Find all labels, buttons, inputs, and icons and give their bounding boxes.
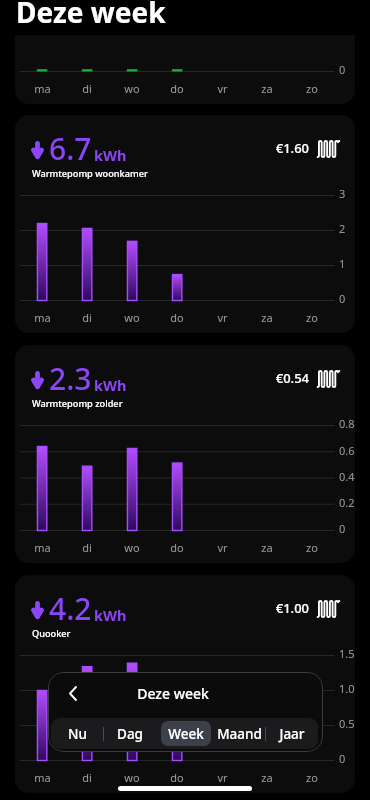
staticText: vr [217,540,228,555]
staticText: do [170,310,184,325]
button[interactable]: Nu [54,721,100,746]
button[interactable]: 0 [15,35,355,104]
staticText: wo [124,540,140,555]
staticText: vr [217,310,228,325]
button[interactable]: 4.2 [15,575,355,793]
staticText: Nu [68,725,87,743]
staticText: kWh [94,375,127,395]
staticText: 1.5 [339,646,355,661]
staticText: wo [124,770,140,785]
button[interactable]: Maand [217,721,262,746]
staticText: ma [34,540,51,555]
staticText: Jaar [279,725,305,743]
staticText: vr [217,81,228,96]
staticText: Dag [117,725,143,743]
staticText: 0 [339,291,346,306]
staticText: wo [124,81,140,96]
staticText: ma [34,310,51,325]
staticText: 0 [339,751,346,766]
button[interactable]: Terug [55,679,91,707]
staticText: zo [306,770,318,785]
staticText: di [82,540,92,555]
staticText: kWh [94,145,127,165]
staticText: do [170,81,184,96]
staticText: 3 [339,186,346,201]
staticText: 4.2 [49,588,92,629]
staticText: zo [306,81,318,96]
button[interactable]: Jaar [268,721,315,746]
staticText: kWh [94,605,127,625]
staticText: Warmtepomp woonkamer [32,167,148,180]
staticText: 0 [339,521,346,536]
staticText: za [261,310,273,325]
staticText: 2.3 [49,358,92,399]
staticText: 2 [339,221,346,236]
staticText: €1.60 [275,139,309,157]
staticText: za [261,81,273,96]
staticText: 0.2 [339,495,355,510]
button[interactable]: Week [161,721,211,746]
staticText: Deze week [16,0,166,31]
button[interactable]: Dag [106,721,154,746]
staticText: €1.00 [275,599,309,617]
staticText: 6.7 [49,128,92,169]
staticText: za [261,770,273,785]
staticText: vr [217,770,228,785]
staticText: Quooker [32,627,71,640]
staticText: Week [168,725,204,743]
staticText: ma [34,81,51,96]
staticText: di [82,81,92,96]
staticText: €0.54 [275,369,309,387]
staticText: zo [306,310,318,325]
staticText: 0.5 [339,716,355,731]
staticText: di [82,310,92,325]
staticText: wo [124,310,140,325]
staticText: di [82,770,92,785]
staticText: za [261,540,273,555]
staticText: Deze week [137,684,209,703]
staticText: 0.6 [339,443,355,458]
staticText: Maand [217,725,262,743]
staticText: 1.0 [339,681,355,696]
staticText: zo [306,540,318,555]
staticText: ma [34,770,51,785]
staticText: do [170,770,184,785]
button[interactable]: 2.3 [15,345,355,563]
staticText: 0 [339,62,346,77]
staticText: 0.8 [339,416,355,431]
staticText: 1 [339,256,346,271]
button[interactable]: 6.7 [15,115,355,333]
staticText: 0.4 [339,469,355,484]
staticText: Warmtepomp zolder [32,397,123,410]
staticText: do [170,540,184,555]
